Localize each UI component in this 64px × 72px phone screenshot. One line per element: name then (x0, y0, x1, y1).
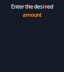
staticText: Enter the desired (11, 3, 53, 10)
staticText: amount (22, 11, 41, 18)
